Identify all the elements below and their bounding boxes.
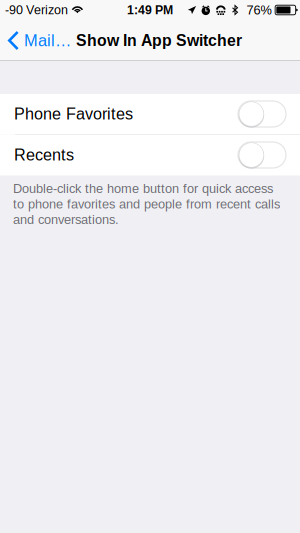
button[interactable]: Mail… (0, 20, 74, 61)
staticText: 1:49 PM (127, 3, 173, 17)
button[interactable]: Phone Favorites (0, 94, 300, 134)
staticText: Mail… (24, 31, 71, 50)
staticText: Recents (14, 146, 74, 164)
button[interactable]: Recents (0, 134, 300, 175)
staticText: to phone favorites and people from recen… (13, 197, 280, 211)
staticText: Show In App Switcher (76, 32, 242, 49)
staticText: Phone Favorites (14, 105, 133, 123)
button[interactable]: Show In App Switcher (74, 20, 242, 61)
staticText: -90 Verizon (5, 3, 68, 17)
staticText: Double-click the home button for quick a… (13, 181, 273, 196)
staticText: and conversations. (13, 212, 119, 227)
staticText: 76% (246, 3, 271, 17)
